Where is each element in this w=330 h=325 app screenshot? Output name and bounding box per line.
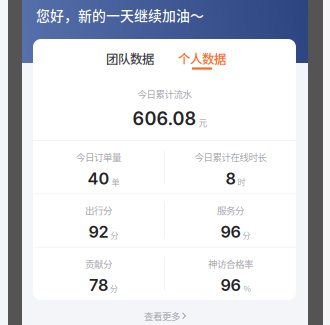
button[interactable]: 贡献分	[33, 248, 164, 300]
staticText: 今日累计流水	[137, 87, 191, 101]
staticText: %	[244, 282, 251, 294]
staticText: 您好，新的一天继续加油～	[36, 5, 204, 25]
button[interactable]: 神访合格率	[165, 248, 296, 300]
staticText: 个人数据	[178, 49, 226, 67]
staticText: 查看更多	[144, 309, 180, 323]
staticText: 团队数据	[106, 49, 154, 67]
button[interactable]: 个人数据	[169, 39, 235, 77]
staticText: 分	[110, 282, 118, 294]
button[interactable]: 出行分	[33, 194, 164, 247]
staticText: 8	[225, 169, 235, 188]
button[interactable]: 查看更多	[22, 307, 308, 325]
button[interactable]: 服务分	[165, 194, 296, 247]
staticText: 606.08	[132, 108, 196, 130]
staticText: 贡献分	[85, 257, 112, 270]
staticText: 神访合格率	[208, 257, 253, 270]
staticText: 96	[220, 275, 240, 295]
staticText: 时	[238, 176, 246, 187]
button[interactable]: 今日累计在线时长	[165, 141, 296, 193]
staticText: 服务分	[217, 203, 244, 217]
staticText: 今日订单量	[76, 150, 121, 164]
staticText: 分	[111, 229, 119, 241]
button[interactable]: 团队数据	[97, 39, 163, 77]
staticText: 92	[88, 222, 108, 242]
staticText: 元	[198, 116, 207, 129]
staticText: 78	[89, 275, 108, 295]
staticText: 分	[243, 229, 251, 241]
staticText: 96	[220, 222, 240, 242]
staticText: 单	[112, 176, 120, 187]
staticText: 出行分	[85, 203, 112, 217]
button[interactable]: 今日订单量	[33, 141, 164, 193]
staticText: 40	[87, 169, 109, 188]
staticText: 今日累计在线时长	[194, 150, 266, 164]
